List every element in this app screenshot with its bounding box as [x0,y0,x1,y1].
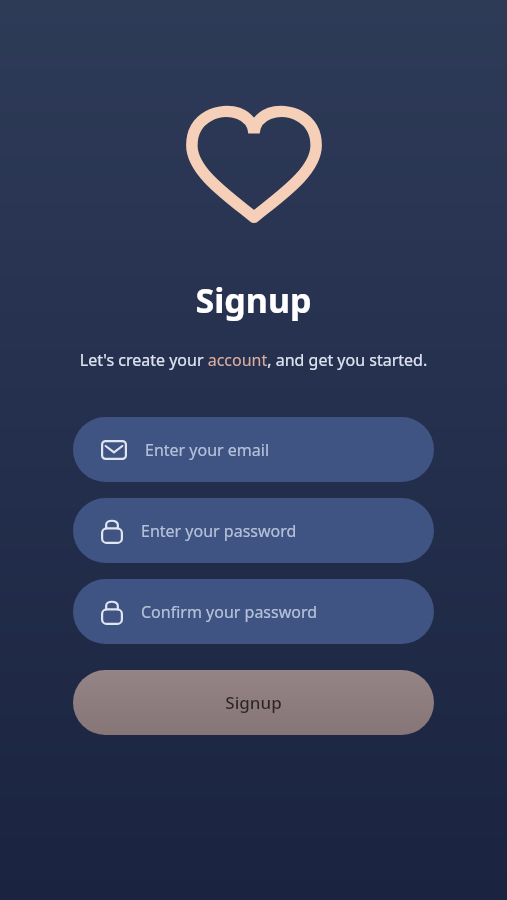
other: Password [101,518,123,544]
button[interactable]: Password [73,579,434,644]
staticText: Confirm your password [141,601,318,623]
button[interactable]: Signup [73,670,434,735]
button[interactable]: Password [73,498,434,563]
button[interactable]: Email [73,417,434,482]
other: Password [101,599,123,625]
staticText: Enter your password [141,520,297,542]
staticText: Let's create your account, and get you s… [66,349,441,371]
other: Email [101,440,127,460]
staticText: Signup [225,691,282,714]
staticText: Signup [195,277,312,323]
staticText: Enter your email [145,439,270,461]
